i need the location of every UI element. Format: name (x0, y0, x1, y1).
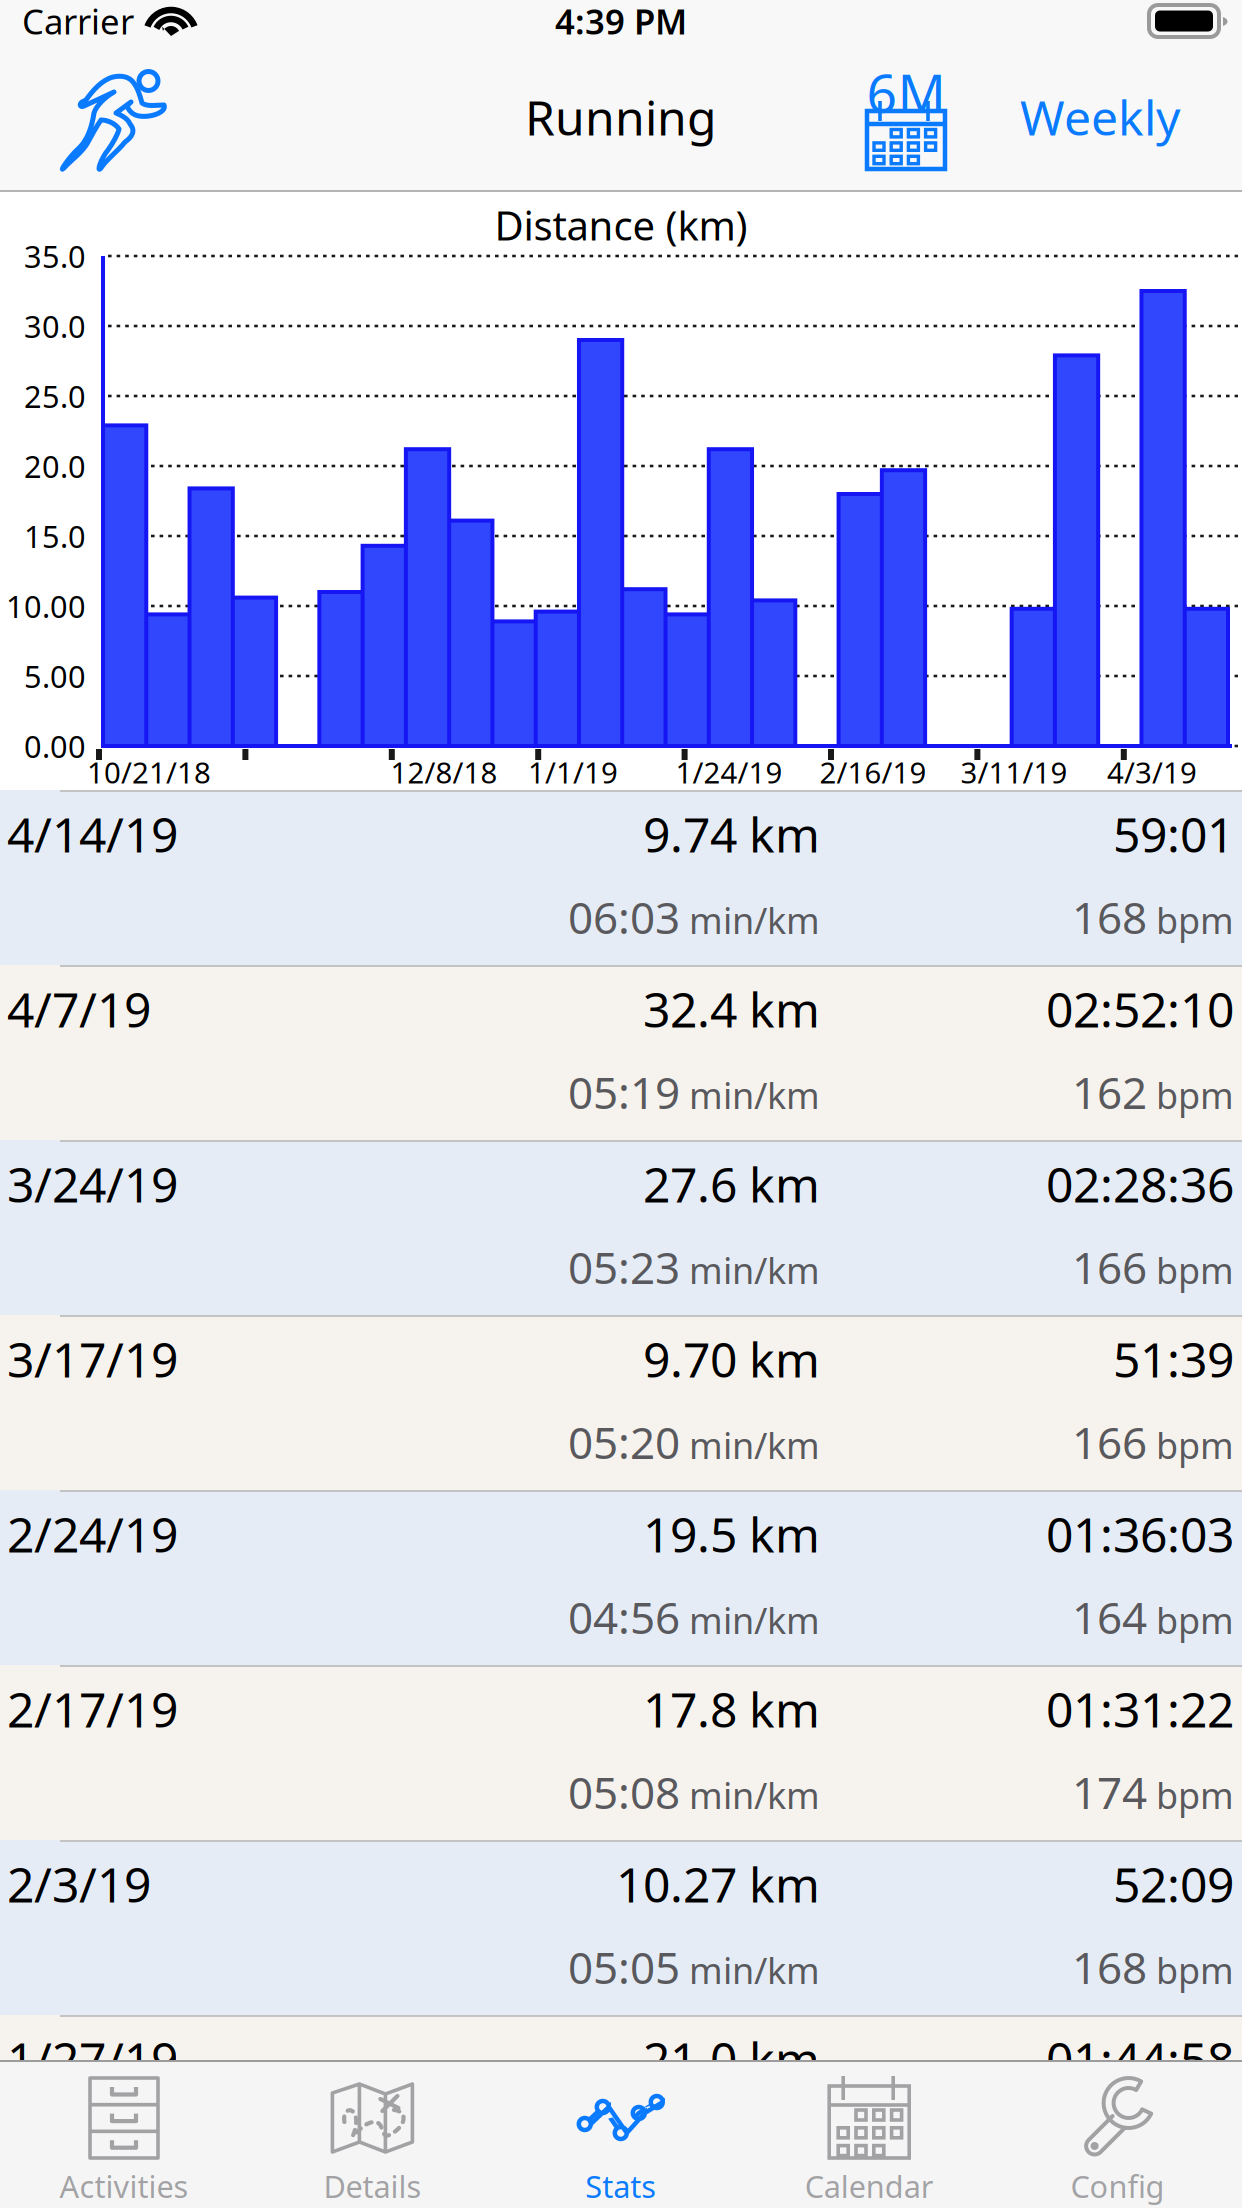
staticText: 06:03 (568, 888, 680, 946)
staticText: bpm (1147, 1596, 1234, 1644)
staticText: 01:36:03 (1046, 1502, 1234, 1566)
staticText: Running (525, 85, 717, 149)
staticText: 2/17/19 (7, 1677, 178, 1741)
staticText: 1/1/19 (528, 752, 618, 791)
staticText: 19.5 km (643, 1502, 820, 1566)
staticText: min/km (680, 1946, 820, 1994)
staticText: Details (323, 2166, 421, 2206)
staticText: Activities (59, 2166, 188, 2206)
staticText: 174 (1072, 1763, 1147, 1821)
staticText: 15.0 (24, 516, 86, 556)
staticText: 162 (1072, 1063, 1147, 1121)
staticText: 52:09 (1113, 1852, 1234, 1916)
staticText: 30.0 (24, 306, 86, 346)
button[interactable]: 2/17/19 (0, 1665, 1242, 1840)
staticText: 01:44:58 (1046, 2027, 1234, 2091)
button[interactable]: Activities (0, 2060, 248, 2208)
button[interactable]: Details (248, 2060, 496, 2208)
button[interactable]: 3/24/19 (0, 1140, 1242, 1315)
staticText: 10/21/18 (87, 752, 211, 791)
staticText: 04:56 (568, 1588, 680, 1646)
button[interactable]: 4/14/19 (0, 790, 1242, 965)
staticText: Calendar (805, 2166, 934, 2206)
staticText: min/km (680, 1071, 820, 1119)
staticText: 4:39 PM (555, 0, 687, 44)
staticText: 166 (1072, 1413, 1147, 1471)
staticText: 05:00 (568, 2113, 680, 2171)
staticText: 17.8 km (643, 1677, 820, 1741)
staticText: 27.6 km (643, 1152, 820, 1216)
staticText: min/km (680, 1596, 820, 1644)
staticText: 4/14/19 (7, 802, 178, 866)
staticText: 5.00 (24, 656, 86, 696)
staticText: bpm (1147, 1246, 1234, 1294)
staticText: 35.0 (24, 236, 86, 276)
staticText: 166 (1072, 1238, 1147, 1296)
staticText: 10.00 (6, 586, 86, 626)
staticText: bpm (1147, 1071, 1234, 1119)
staticText: Stats (585, 2166, 656, 2206)
staticText: 05:19 (568, 1063, 680, 1121)
staticText: 01:31:22 (1046, 1677, 1234, 1741)
staticText: 12/8/18 (390, 752, 497, 791)
staticText: Weekly (1020, 85, 1180, 149)
staticText: 1/27/19 (7, 2027, 178, 2091)
button[interactable]: 1/27/19 (0, 2015, 1242, 2190)
staticText: 9.70 km (643, 1327, 820, 1391)
staticText: 9.74 km (643, 802, 820, 866)
staticText: 05:23 (568, 1238, 680, 1296)
staticText: Distance (km) (494, 198, 747, 251)
staticText: 3/24/19 (7, 1152, 178, 1216)
staticText: 59:01 (1113, 802, 1234, 866)
staticText: 4/7/19 (7, 977, 151, 1041)
button[interactable]: Config (994, 2060, 1242, 2208)
staticText: Carrier (22, 0, 134, 44)
staticText: min/km (680, 1771, 820, 1819)
staticText: 21.0 km (643, 2027, 820, 2091)
staticText: 10.27 km (616, 1852, 820, 1916)
staticText: 02:28:36 (1046, 1152, 1234, 1216)
staticText: Config (1071, 2166, 1165, 2206)
staticText: 05:05 (568, 1938, 680, 1996)
staticText: 4/3/19 (1107, 752, 1197, 791)
button[interactable]: 3/17/19 (0, 1315, 1242, 1490)
staticText: min/km (680, 896, 820, 944)
staticText: 168 (1072, 1938, 1147, 1996)
button[interactable]: Stats (497, 2060, 745, 2208)
staticText: 2/3/19 (7, 1852, 151, 1916)
staticText: bpm (1147, 1771, 1234, 1819)
staticText: 168 (1072, 888, 1147, 946)
staticText: 170 (1072, 2113, 1147, 2171)
button[interactable]: Weekly (950, 42, 1180, 192)
staticText: 02:52:10 (1046, 977, 1234, 1041)
button[interactable]: 4/7/19 (0, 965, 1242, 1140)
staticText: 2/16/19 (819, 752, 926, 791)
staticText: bpm (1147, 1946, 1234, 1994)
staticText: min/km (680, 1421, 820, 1469)
button[interactable]: 2/24/19 (0, 1490, 1242, 1665)
staticText: bpm (1147, 896, 1234, 944)
staticText: 3/11/19 (960, 752, 1067, 791)
staticText: 2/24/19 (7, 1502, 178, 1566)
button[interactable]: 2/3/19 (0, 1840, 1242, 2015)
staticText: 51:39 (1113, 1327, 1234, 1391)
button[interactable]: Six month range (836, 44, 976, 194)
staticText: 20.0 (24, 446, 86, 486)
staticText: 25.0 (24, 376, 86, 416)
staticText: 164 (1072, 1588, 1147, 1646)
staticText: 05:08 (568, 1763, 680, 1821)
staticText: 3/17/19 (7, 1327, 178, 1391)
staticText: 0.00 (24, 726, 86, 766)
staticText: 32.4 km (643, 977, 820, 1041)
staticText: min/km (680, 1246, 820, 1294)
staticText: bpm (1147, 1421, 1234, 1469)
button[interactable]: Calendar (745, 2060, 993, 2208)
staticText: 05:20 (568, 1413, 680, 1471)
staticText: 1/24/19 (675, 752, 782, 791)
button[interactable]: Running activity (22, 42, 202, 192)
staticText: 6M (866, 57, 945, 127)
